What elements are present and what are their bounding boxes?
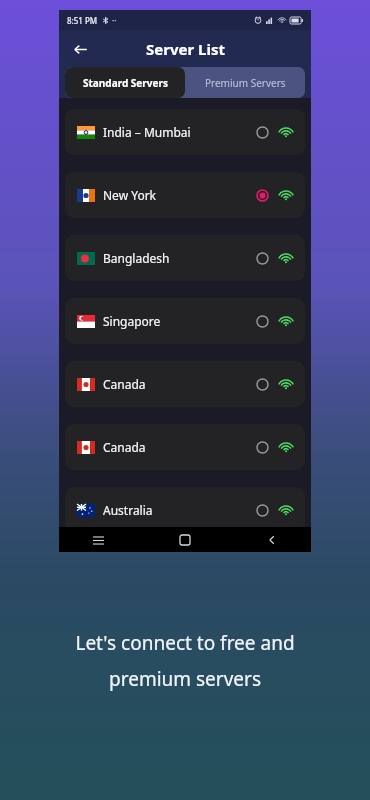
- staticText: Canada: [103, 376, 146, 392]
- staticText: Singapore: [103, 313, 161, 329]
- staticText: India – Mumbai: [103, 124, 191, 140]
- staticText: New York: [103, 187, 157, 203]
- staticText: 8:51 PM: [67, 15, 98, 26]
- button[interactable]: Premium Servers: [185, 67, 305, 98]
- staticText: Let's connect to free and premium server…: [75, 630, 295, 692]
- button[interactable]: Bangladesh: [65, 235, 305, 281]
- button[interactable]: India – Mumbai: [65, 109, 305, 155]
- button[interactable]: Australia: [65, 487, 305, 533]
- button[interactable]: Singapore: [65, 298, 305, 344]
- staticText: ··: [112, 15, 117, 26]
- staticText: Canada: [103, 439, 146, 455]
- staticText: Standard Servers: [83, 76, 168, 90]
- staticText: Bangladesh: [103, 250, 170, 266]
- staticText: Premium Servers: [205, 76, 286, 90]
- button[interactable]: Recents: [87, 529, 109, 551]
- button[interactable]: Home: [174, 529, 196, 551]
- button[interactable]: Back: [67, 36, 93, 62]
- staticText: Server List: [146, 39, 225, 59]
- button[interactable]: New York: [65, 172, 305, 218]
- staticText: Australia: [103, 502, 153, 518]
- button[interactable]: Canada: [65, 361, 305, 407]
- button[interactable]: Back: [261, 529, 283, 551]
- button[interactable]: Canada: [65, 424, 305, 470]
- button[interactable]: Standard Servers: [65, 67, 185, 98]
